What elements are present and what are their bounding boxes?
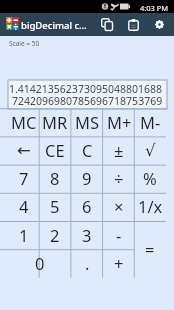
button[interactable]: .: [71, 250, 103, 278]
staticText: 1/x: [138, 195, 163, 217]
button[interactable]: M+: [103, 109, 135, 137]
staticText: 1.414213562373095048801688: [9, 82, 162, 96]
staticText: CE: [45, 139, 65, 161]
staticText: %: [143, 167, 157, 189]
staticText: ÷: [114, 167, 124, 189]
button[interactable]: M-: [134, 109, 166, 137]
button[interactable]: √: [134, 137, 166, 165]
button[interactable]: MS: [71, 109, 103, 137]
staticText: bigDecimal c…: [21, 19, 87, 32]
staticText: ×: [114, 195, 124, 217]
button[interactable]: 1.414213562373095048801688: [8, 80, 167, 109]
staticText: 7242096980785696718753769: [12, 94, 163, 108]
button[interactable]: 0: [8, 250, 71, 278]
staticText: MR: [42, 111, 68, 133]
staticText: 8: [50, 167, 60, 189]
button[interactable]: ±: [103, 137, 135, 165]
staticText: 4:03 PM: [140, 3, 169, 13]
button[interactable]: 6: [71, 193, 103, 221]
button[interactable]: 1: [8, 222, 40, 250]
staticText: +: [114, 252, 124, 274]
button[interactable]: ×: [103, 193, 135, 221]
button[interactable]: %: [134, 165, 166, 193]
button[interactable]: 7: [8, 165, 40, 193]
button[interactable]: +: [103, 250, 135, 278]
staticText: -: [116, 224, 122, 246]
button[interactable]: MC: [8, 109, 40, 137]
button[interactable]: 3: [71, 222, 103, 250]
staticText: ←: [17, 141, 31, 160]
staticText: 5: [50, 195, 60, 217]
button[interactable]: 4: [8, 193, 40, 221]
button[interactable]: CE: [39, 137, 71, 165]
button[interactable]: Settings: [146, 13, 172, 36]
button[interactable]: 8: [39, 165, 71, 193]
button[interactable]: Copy: [94, 13, 120, 36]
staticText: √: [145, 141, 156, 160]
button[interactable]: 5: [39, 193, 71, 221]
staticText: C: [82, 139, 93, 161]
staticText: 0: [35, 252, 45, 274]
button[interactable]: ←: [8, 137, 40, 165]
button[interactable]: 2: [39, 222, 71, 250]
staticText: 6: [82, 195, 92, 217]
button[interactable]: Paste: [120, 13, 146, 36]
staticText: 4: [19, 195, 29, 217]
button[interactable]: 1/x: [134, 193, 166, 221]
button[interactable]: C: [71, 137, 103, 165]
staticText: 7: [19, 167, 29, 189]
button[interactable]: 9: [71, 165, 103, 193]
staticText: 1: [19, 224, 29, 246]
staticText: MS: [75, 111, 100, 133]
staticText: 2: [50, 224, 60, 246]
staticText: .: [85, 252, 90, 274]
staticText: M-: [140, 111, 161, 133]
staticText: M+: [107, 111, 132, 133]
button[interactable]: MR: [39, 109, 71, 137]
staticText: ±: [114, 139, 124, 161]
staticText: MC: [11, 111, 37, 133]
button[interactable]: -: [103, 222, 135, 250]
staticText: 9: [82, 167, 92, 189]
button[interactable]: =: [134, 222, 166, 278]
button[interactable]: ÷: [103, 165, 135, 193]
staticText: =: [145, 238, 155, 260]
staticText: Scale = 50: [9, 39, 40, 48]
staticText: 3: [82, 224, 92, 246]
